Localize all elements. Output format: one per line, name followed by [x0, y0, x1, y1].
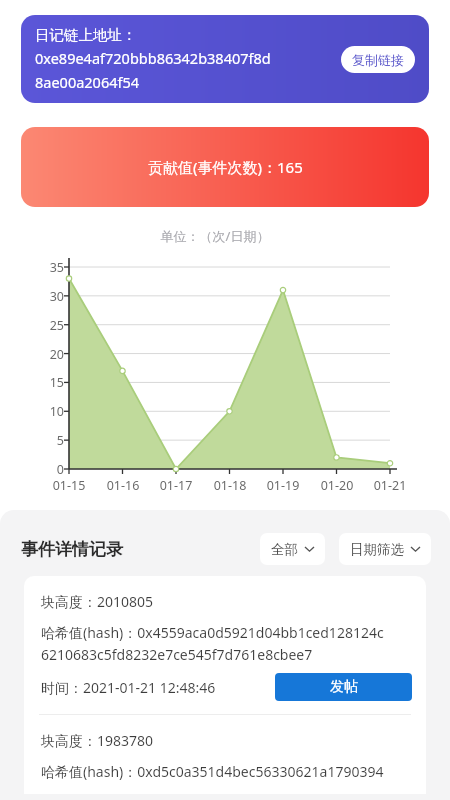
staticText: 6210683c5fd8232e7ce545f7d761e8cbee7 — [41, 645, 313, 664]
staticText: 全部 — [271, 541, 298, 558]
staticText: 日期筛选 — [350, 541, 404, 558]
staticText: 01-19 — [257, 477, 309, 494]
staticText: 哈希值(hash)：0x4559aca0d5921d04bb1ced128124… — [41, 623, 384, 642]
staticText: 35 — [38, 259, 64, 276]
other: 全部 展开 — [305, 546, 314, 552]
staticText: 8ae00a2064f54 — [35, 72, 140, 92]
staticText: 20 — [38, 346, 64, 363]
button[interactable]: 发帖 — [275, 673, 412, 701]
button[interactable]: 日期筛选 — [339, 533, 431, 565]
button[interactable]: 贡献值(事件次数)：165 — [21, 127, 429, 207]
staticText: 01-18 — [204, 477, 256, 494]
button[interactable]: 全部 — [260, 533, 325, 565]
staticText: 01-21 — [364, 477, 416, 494]
staticText: 块高度：2010805 — [41, 592, 154, 611]
button[interactable]: 日记链上地址： — [21, 15, 429, 103]
staticText: 5 — [38, 432, 64, 449]
staticText: 复制链接 — [352, 52, 404, 68]
staticText: 贡献值(事件次数)：165 — [148, 157, 303, 177]
button[interactable]: 块高度：2010805 — [24, 576, 426, 714]
staticText: 块高度：1983780 — [41, 731, 154, 750]
button[interactable]: 复制链接 — [341, 46, 415, 73]
staticText: 01-17 — [150, 477, 202, 494]
staticText: 事件详情记录 — [21, 539, 123, 560]
staticText: 哈希值(hash)：0xd5c0a351d4bec56330621a179039… — [41, 762, 384, 781]
staticText: 日记链上地址： — [35, 26, 137, 44]
staticText: 时间：2021-01-21 12:48:46 — [41, 678, 216, 697]
staticText: 01-16 — [97, 477, 149, 494]
staticText: 25 — [38, 317, 64, 334]
button[interactable]: 块高度：1983780 — [24, 715, 426, 794]
other: 日期筛选 展开 — [411, 546, 420, 552]
staticText: 0xe89e4af720bbb86342b38407f8d — [35, 48, 271, 68]
staticText: 0 — [38, 461, 64, 478]
staticText: 发帖 — [330, 678, 358, 696]
staticText: 单位：（次/日期） — [40, 227, 390, 245]
staticText: 01-20 — [311, 477, 363, 494]
staticText: 15 — [38, 374, 64, 391]
staticText: 30 — [38, 288, 64, 305]
staticText: 10 — [38, 403, 64, 420]
staticText: 01-15 — [43, 477, 95, 494]
